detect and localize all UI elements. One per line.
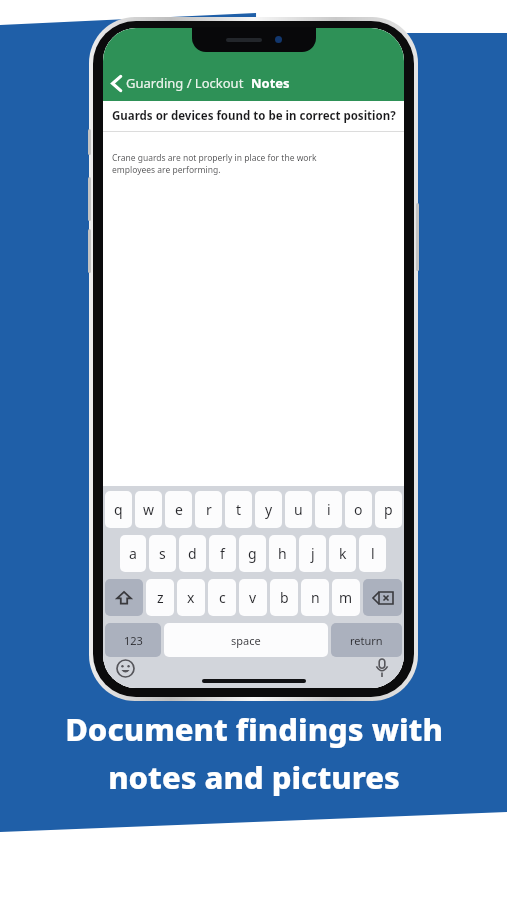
staticText: h bbox=[278, 544, 287, 563]
button[interactable]: v bbox=[239, 579, 267, 616]
button[interactable]: y bbox=[255, 491, 282, 528]
staticText: q bbox=[114, 500, 123, 519]
button[interactable]: z bbox=[146, 579, 174, 616]
staticText: j bbox=[311, 544, 315, 563]
staticText: k bbox=[339, 544, 347, 563]
other: Back bbox=[111, 75, 122, 92]
staticText: Notes bbox=[251, 74, 290, 92]
staticText: y bbox=[265, 500, 273, 519]
staticText: Guards or devices found to be in correct… bbox=[112, 108, 396, 124]
button[interactable]: e bbox=[165, 491, 192, 528]
staticText: l bbox=[371, 544, 375, 563]
button[interactable]: l bbox=[359, 535, 386, 572]
button[interactable]: Shift bbox=[105, 579, 143, 616]
button[interactable]: t bbox=[225, 491, 252, 528]
staticText: i bbox=[327, 500, 331, 519]
button[interactable]: i bbox=[315, 491, 342, 528]
staticText: r bbox=[206, 500, 212, 519]
staticText: d bbox=[188, 544, 197, 563]
staticText: c bbox=[219, 588, 226, 607]
button[interactable]: s bbox=[149, 535, 176, 572]
button[interactable]: x bbox=[177, 579, 205, 616]
button[interactable]: w bbox=[135, 491, 162, 528]
button[interactable]: b bbox=[270, 579, 298, 616]
button[interactable]: f bbox=[209, 535, 236, 572]
button[interactable]: p bbox=[375, 491, 402, 528]
staticText: p bbox=[384, 500, 393, 519]
button[interactable]: Dictate bbox=[368, 654, 396, 682]
button[interactable]: o bbox=[345, 491, 372, 528]
staticText: v bbox=[249, 588, 257, 607]
staticText: return bbox=[350, 633, 383, 648]
button[interactable]: return bbox=[331, 623, 402, 657]
button[interactable]: c bbox=[208, 579, 236, 616]
staticText: x bbox=[187, 588, 195, 607]
staticText: s bbox=[159, 544, 166, 563]
staticText: f bbox=[220, 544, 225, 563]
staticText: n bbox=[311, 588, 320, 607]
staticText: z bbox=[157, 588, 164, 607]
staticText: e bbox=[175, 500, 183, 519]
staticText: t bbox=[236, 500, 242, 519]
staticText: a bbox=[129, 544, 137, 563]
button[interactable]: n bbox=[301, 579, 329, 616]
staticText: w bbox=[143, 500, 155, 519]
button[interactable]: j bbox=[299, 535, 326, 572]
button[interactable]: a bbox=[120, 535, 146, 572]
staticText: o bbox=[354, 500, 363, 519]
button[interactable]: Back bbox=[109, 71, 292, 95]
staticText: Guarding / Lockout bbox=[126, 74, 244, 92]
staticText: Document findings with bbox=[65, 708, 443, 750]
button[interactable]: 123 bbox=[105, 623, 161, 657]
staticText: b bbox=[280, 588, 289, 607]
staticText: 123 bbox=[124, 633, 143, 648]
staticText: g bbox=[248, 544, 257, 563]
button[interactable]: u bbox=[285, 491, 312, 528]
button[interactable]: g bbox=[239, 535, 266, 572]
button[interactable]: k bbox=[329, 535, 356, 572]
staticText: Crane guards are not properly in place f… bbox=[112, 152, 317, 176]
button[interactable]: r bbox=[195, 491, 222, 528]
button[interactable]: h bbox=[269, 535, 296, 572]
button[interactable]: q bbox=[105, 491, 132, 528]
button[interactable]: Emoji bbox=[111, 654, 139, 682]
staticText: u bbox=[294, 500, 303, 519]
button[interactable]: Crane guards are not properly in place f… bbox=[103, 132, 404, 486]
staticText: m bbox=[339, 588, 353, 607]
button[interactable]: space bbox=[164, 623, 328, 657]
button[interactable]: m bbox=[332, 579, 360, 616]
staticText: notes and pictures bbox=[108, 756, 400, 798]
staticText: space bbox=[231, 633, 261, 648]
button[interactable]: Backspace bbox=[363, 579, 402, 616]
button[interactable]: d bbox=[179, 535, 206, 572]
